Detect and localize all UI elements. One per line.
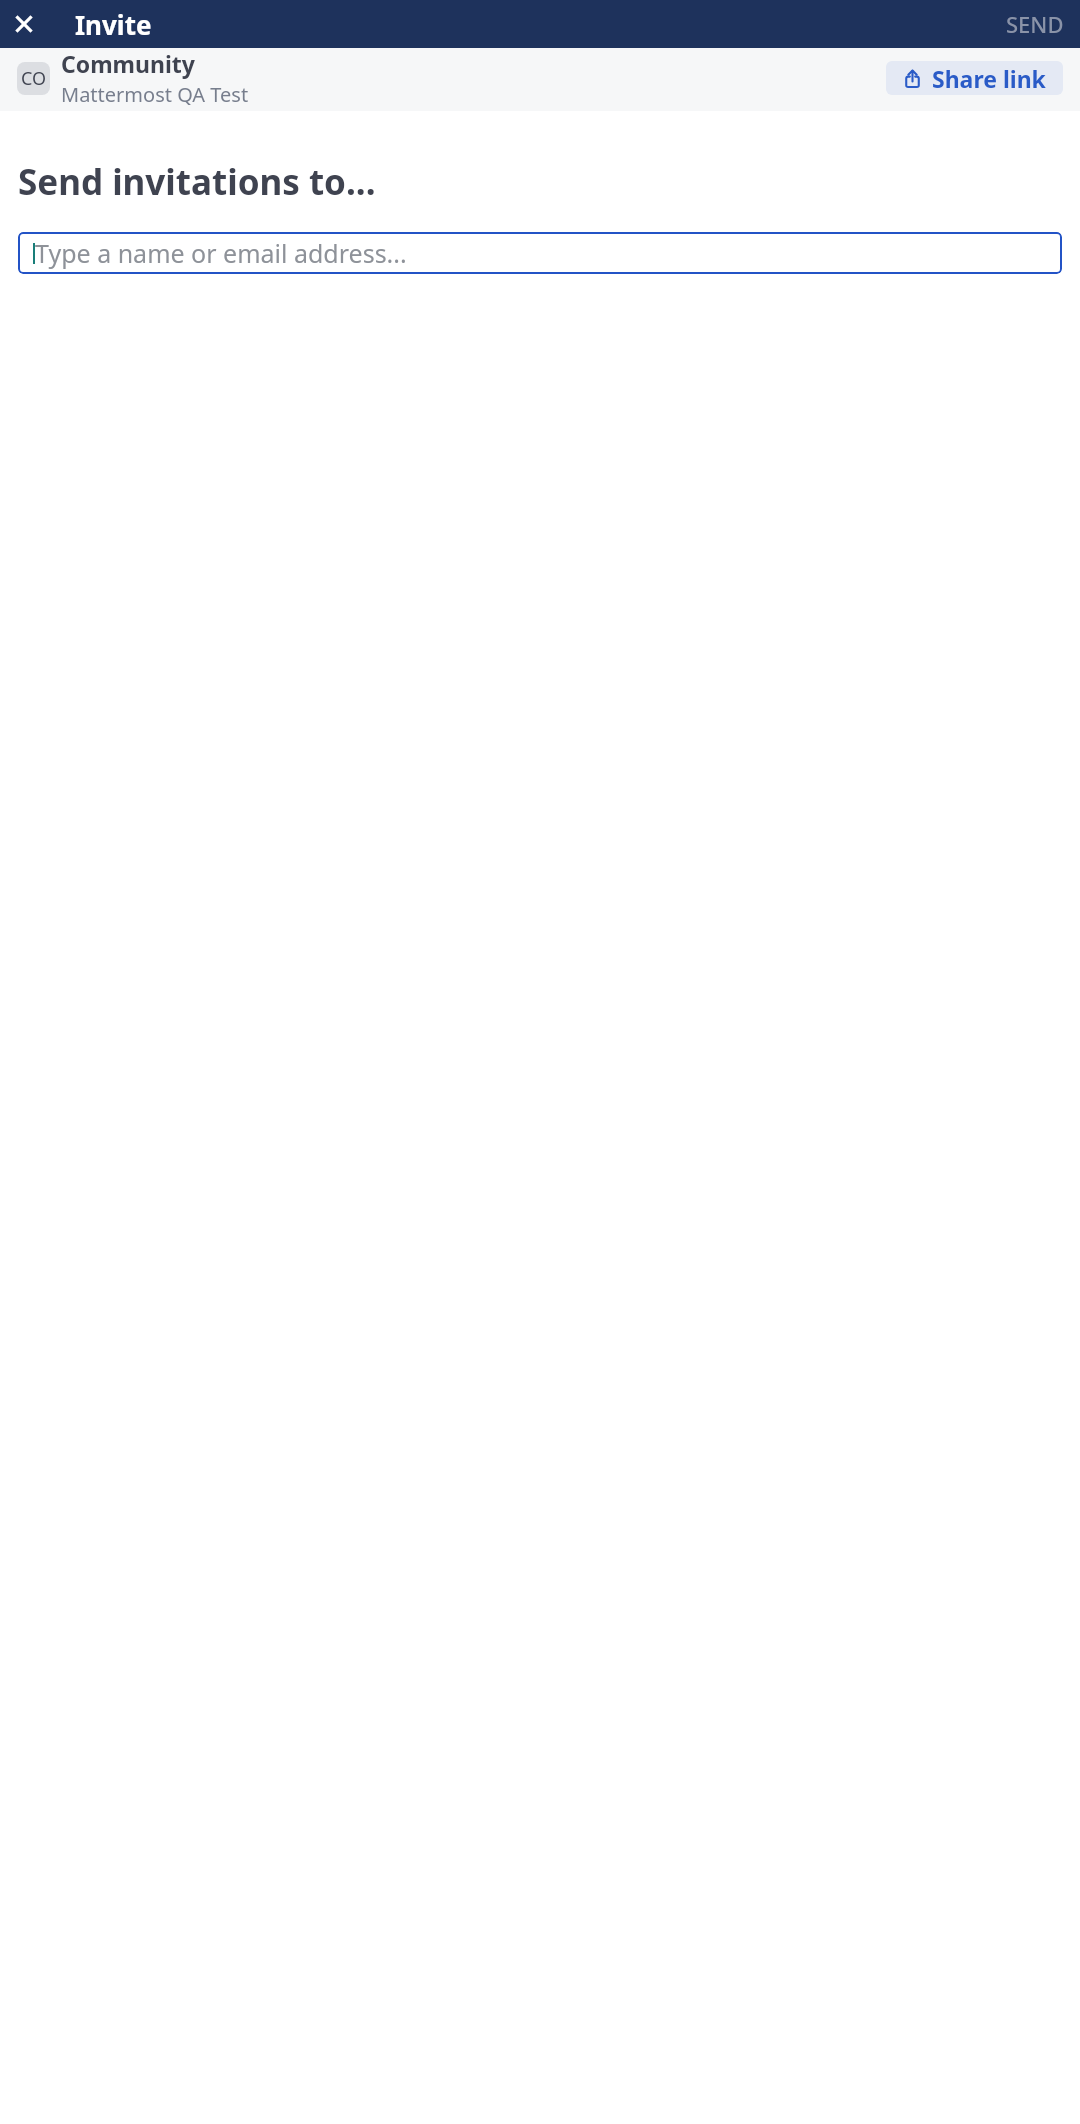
button[interactable]: SEND — [990, 1, 1080, 47]
staticText: Send invitations to... — [18, 158, 376, 206]
staticText: Mattermost QA Test — [61, 81, 249, 108]
button[interactable]: Share link — [886, 61, 1063, 95]
staticText: Community — [61, 48, 195, 79]
staticText: Share link — [932, 63, 1046, 94]
button[interactable]: Close — [4, 4, 44, 44]
staticText: Invite — [75, 7, 152, 42]
staticText: Type a name or email address... — [35, 236, 407, 270]
staticText: SEND — [1006, 9, 1064, 39]
button[interactable]: Type a name or email address... — [18, 232, 1062, 274]
staticText: CO — [21, 66, 47, 91]
